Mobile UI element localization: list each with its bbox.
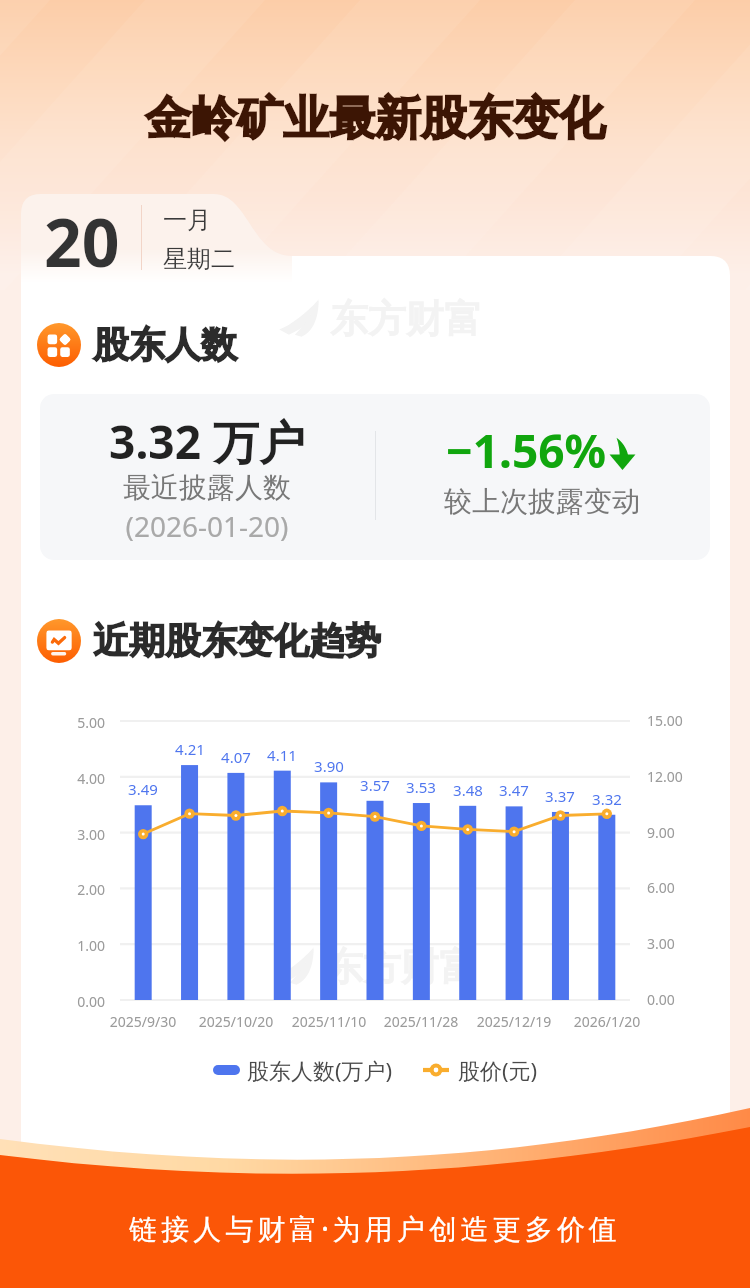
staticText: 3.53 (391, 777, 451, 797)
staticText: 2025/11/10 (259, 1012, 399, 1031)
staticText: 3.49 (113, 779, 173, 799)
staticText: 链接人与财富·为用户创造更多价值 (0, 1209, 750, 1247)
staticText: 4.21 (160, 739, 220, 759)
staticText: 4.07 (206, 747, 266, 767)
button[interactable]: 股东人数 (37, 322, 237, 367)
staticText: (2026‐01‐20) (7, 507, 407, 545)
staticText: 3.48 (438, 780, 498, 800)
staticText: 4.11 (252, 745, 312, 765)
button[interactable]: 近期股东变化趋势 (37, 618, 381, 663)
staticText: 12.00 (647, 767, 707, 786)
staticText: 3.32 (577, 789, 637, 809)
staticText: 15.00 (647, 711, 707, 730)
staticText: 股东人数 (93, 322, 237, 367)
staticText: 一月 (163, 205, 211, 235)
staticText: 最近披露人数 (7, 470, 407, 505)
staticText: 星期二 (163, 244, 235, 274)
staticText: 3.37 (530, 786, 590, 806)
staticText: 3.00 (45, 825, 105, 844)
staticText: 股东人数(万户) (247, 1055, 393, 1085)
staticText: 3.32 万户 (7, 410, 407, 473)
staticText: 2025/9/30 (73, 1012, 213, 1031)
staticText: 股价(元) (458, 1055, 538, 1085)
staticText: 1.00 (45, 936, 105, 955)
staticText: 9.00 (647, 823, 707, 842)
staticText: 20 (44, 196, 120, 286)
staticText: 2026/1/20 (537, 1012, 677, 1031)
staticText: 东方财富 (325, 943, 477, 991)
staticText: 东方财富 (330, 295, 482, 343)
staticText: 0.00 (647, 990, 707, 1009)
staticText: 近期股东变化趋势 (93, 618, 381, 663)
staticText: −1.56% (446, 419, 607, 482)
staticText: 2025/10/20 (166, 1012, 306, 1031)
staticText: 较上次披露变动 (342, 484, 742, 519)
staticText: 2.00 (45, 880, 105, 899)
staticText: 3.90 (299, 756, 359, 776)
staticText: 金岭矿业最新股东变化 (0, 90, 750, 148)
staticText: 4.00 (45, 769, 105, 788)
staticText: 3.57 (345, 775, 405, 795)
staticText: 2025/12/19 (444, 1012, 584, 1031)
staticText: 6.00 (647, 878, 707, 897)
staticText: 3.00 (647, 934, 707, 953)
staticText: 3.47 (484, 780, 544, 800)
staticText: 5.00 (45, 713, 105, 732)
staticText: 2025/11/28 (351, 1012, 491, 1031)
staticText: 0.00 (45, 992, 105, 1011)
